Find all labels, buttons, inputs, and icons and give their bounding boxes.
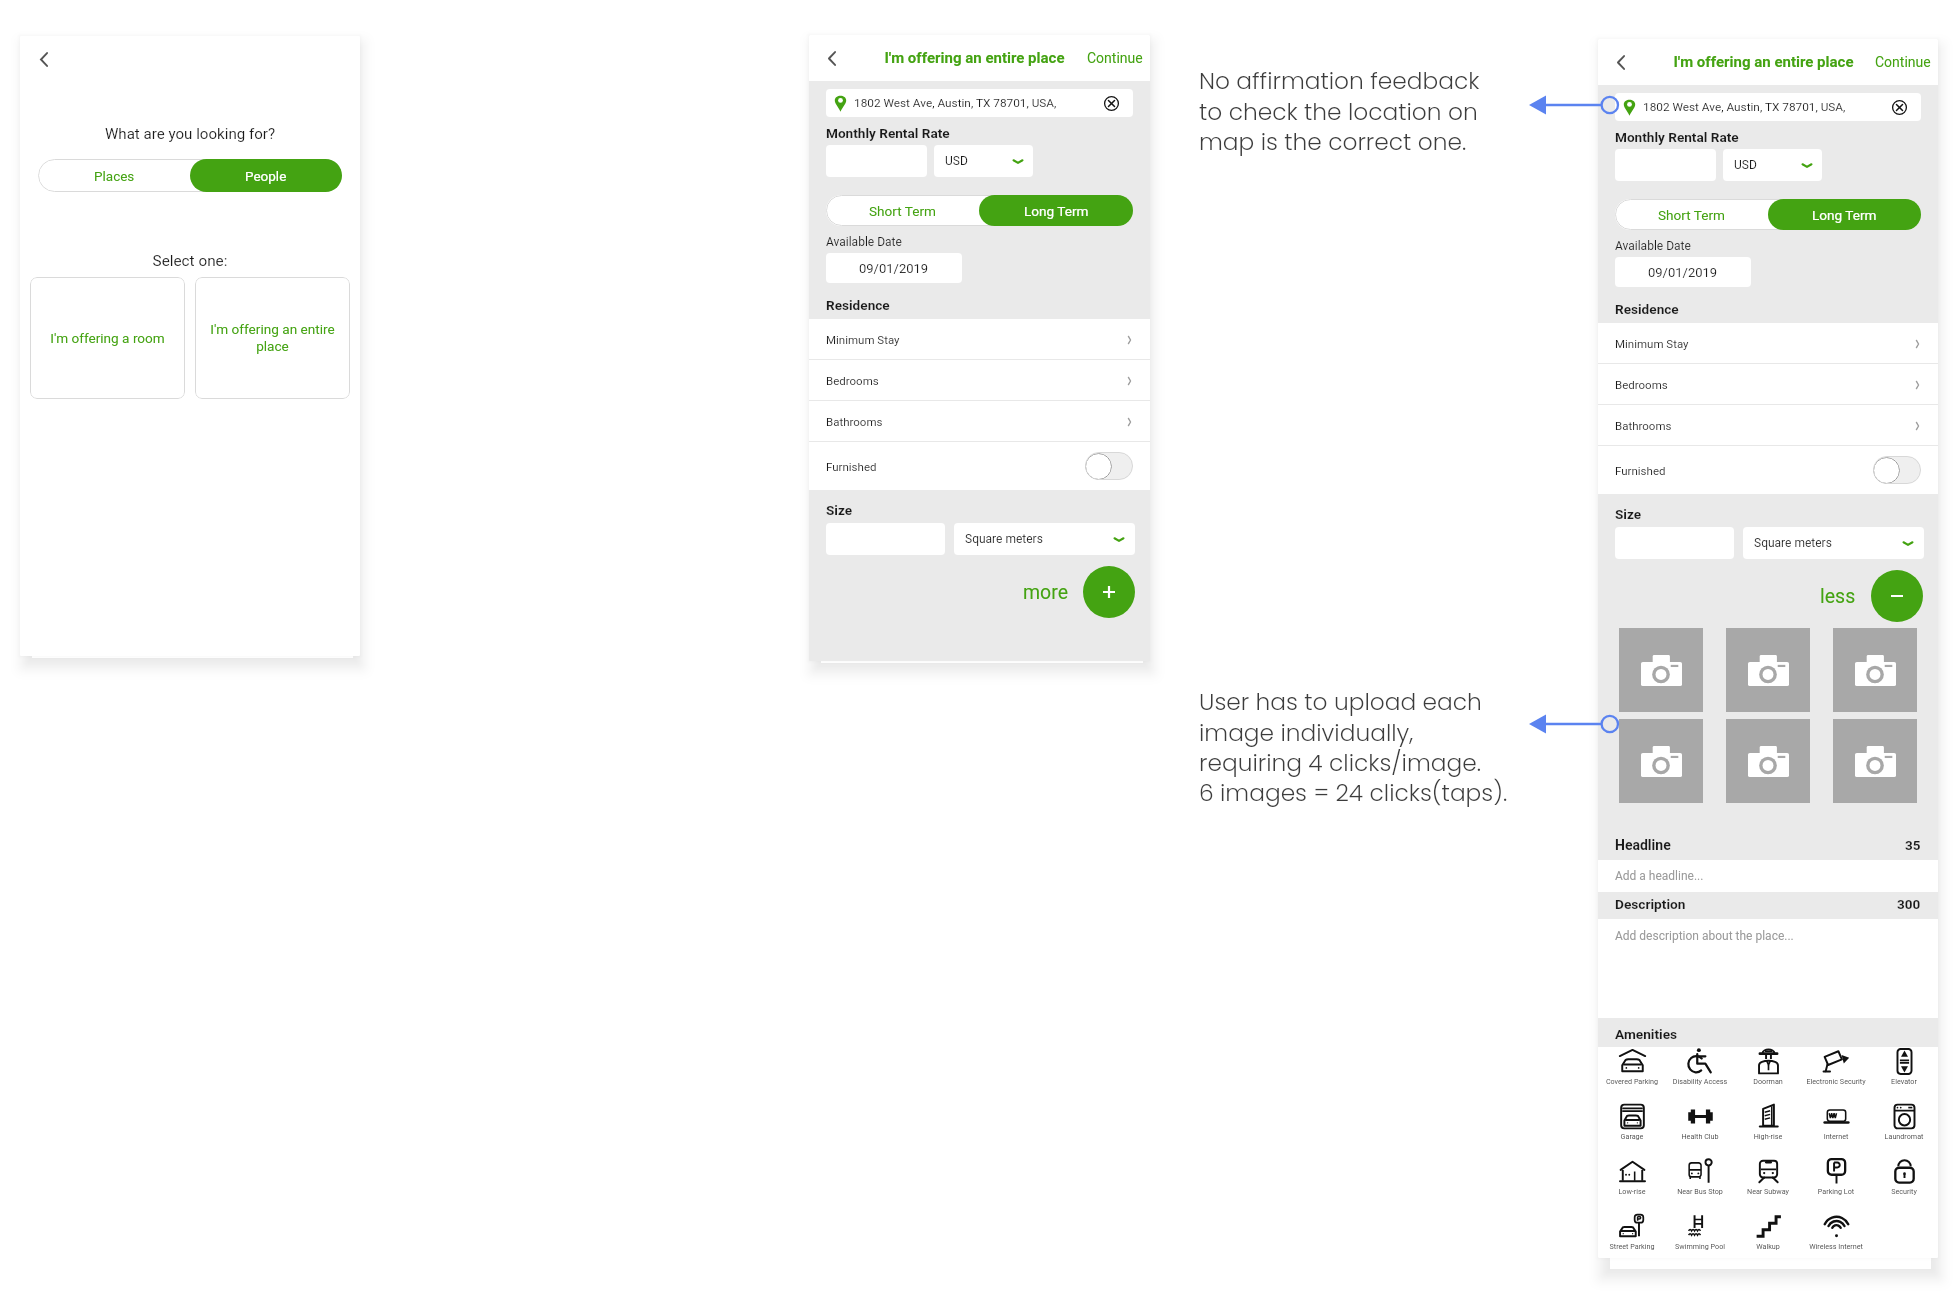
staticText: Headline xyxy=(1615,837,1671,853)
staticText: Near Subway xyxy=(1734,1187,1802,1195)
button[interactable]: I'm offering a room xyxy=(30,277,185,399)
staticText: 35 xyxy=(1905,837,1921,853)
button[interactable]: Bathrooms xyxy=(809,401,1150,442)
staticText: I'm offering a room xyxy=(50,330,165,346)
button[interactable]: Walkup xyxy=(1734,1212,1802,1258)
staticText: Description xyxy=(1615,896,1686,912)
button[interactable]: Add description about the place... xyxy=(1598,919,1938,1018)
button[interactable]: People xyxy=(190,159,342,192)
button[interactable]: Doorman xyxy=(1734,1047,1802,1102)
staticText: 09/01/2019 xyxy=(859,261,929,276)
staticText: No affirmation feedback to check the loc… xyxy=(1199,65,1480,159)
button[interactable]: Show less xyxy=(1871,570,1923,622)
staticText: more xyxy=(1023,581,1068,604)
staticText: Electronic Security xyxy=(1802,1077,1870,1085)
staticText: Garage xyxy=(1598,1132,1666,1140)
button[interactable]: Bathrooms xyxy=(1598,405,1938,446)
staticText: Covered Parking xyxy=(1598,1077,1666,1085)
staticText: Long Term xyxy=(1024,203,1089,219)
button[interactable]: Health Club xyxy=(1666,1102,1734,1157)
button[interactable]: 09/01/2019 xyxy=(826,253,962,283)
button[interactable]: Street Parking xyxy=(1598,1212,1666,1258)
button[interactable]: Wireless Internet xyxy=(1802,1212,1870,1258)
button[interactable]: 1802 West Ave, Austin, TX 78701, USA, xyxy=(1615,93,1921,121)
staticText: Size xyxy=(826,502,853,518)
button[interactable]: I'm offering an entire place xyxy=(195,277,350,399)
staticText: Places xyxy=(94,168,135,184)
staticText: Monthly Rental Rate xyxy=(1615,129,1739,145)
button[interactable]: Short Term xyxy=(826,195,979,226)
button[interactable]: Minimum Stay xyxy=(809,319,1150,360)
staticText: Parking Lot xyxy=(1802,1187,1870,1195)
staticText: What are you looking for? xyxy=(20,125,360,143)
button[interactable]: Back xyxy=(31,46,57,72)
button[interactable]: Low-rise xyxy=(1598,1157,1666,1212)
button[interactable]: USD xyxy=(1723,149,1822,181)
staticText: Swimming Pool xyxy=(1666,1242,1734,1250)
staticText: I'm offering an entire place xyxy=(884,49,1065,67)
button[interactable]: less xyxy=(1820,578,1856,615)
staticText: Select one: xyxy=(20,252,360,270)
staticText: Bedrooms xyxy=(1615,378,1668,391)
staticText: 300 xyxy=(1897,896,1921,912)
staticText: Residence xyxy=(826,297,890,313)
button[interactable]: Add a headline... xyxy=(1598,860,1938,892)
staticText: Elevator xyxy=(1870,1077,1938,1085)
button[interactable]: Add photo xyxy=(1726,628,1810,712)
button[interactable]: Back xyxy=(819,45,845,71)
button[interactable]: Square meters xyxy=(1743,527,1924,559)
button[interactable]: Add photo xyxy=(1833,628,1917,712)
button[interactable]: Covered Parking xyxy=(1598,1047,1666,1102)
button[interactable]: Long Term xyxy=(1768,199,1921,230)
button[interactable]: Add photo xyxy=(1833,719,1917,803)
button[interactable]: Near Subway xyxy=(1734,1157,1802,1212)
button[interactable]: Continue xyxy=(1864,48,1938,76)
button[interactable]: Bedrooms xyxy=(809,360,1150,401)
button[interactable]: Continue xyxy=(1076,44,1150,72)
staticText: Long Term xyxy=(1812,207,1877,223)
button[interactable]: Long Term xyxy=(979,195,1133,226)
staticText: USD xyxy=(1734,158,1757,172)
staticText: I'm offering an entire place xyxy=(1673,53,1854,71)
button[interactable]: Bedrooms xyxy=(1598,364,1938,405)
button[interactable]: Parking Lot xyxy=(1802,1157,1870,1212)
button[interactable]: Garage xyxy=(1598,1102,1666,1157)
button[interactable]: High-rise xyxy=(1734,1102,1802,1157)
button[interactable]: more xyxy=(1023,574,1068,611)
button[interactable]: Laundromat xyxy=(1870,1102,1938,1157)
staticText: I'm offering an entire place xyxy=(208,321,337,355)
button[interactable]: Security xyxy=(1870,1157,1938,1212)
button[interactable]: Minimum Stay xyxy=(1598,323,1938,364)
staticText: Street Parking xyxy=(1598,1242,1666,1250)
button[interactable]: Back xyxy=(1608,49,1634,75)
button[interactable]: Internet xyxy=(1802,1102,1870,1157)
staticText: Add a headline... xyxy=(1615,869,1704,883)
button[interactable]: USD xyxy=(934,145,1033,177)
button[interactable]: Add photo xyxy=(1619,719,1703,803)
button[interactable]: 1802 West Ave, Austin, TX 78701, USA, xyxy=(826,89,1133,117)
button[interactable]: Disability Access xyxy=(1666,1047,1734,1102)
staticText: 1802 West Ave, Austin, TX 78701, USA, xyxy=(854,96,1057,110)
staticText: Monthly Rental Rate xyxy=(826,125,950,141)
button[interactable]: Furnished xyxy=(1598,446,1938,494)
button[interactable]: Elevator xyxy=(1870,1047,1938,1102)
button[interactable]: Swimming Pool xyxy=(1666,1212,1734,1258)
button[interactable]: Short Term xyxy=(1615,199,1768,230)
staticText: Residence xyxy=(1615,301,1679,317)
button[interactable]: Square meters xyxy=(954,523,1135,555)
button[interactable]: Add photo xyxy=(1619,628,1703,712)
staticText: Continue xyxy=(1875,54,1931,70)
button[interactable]: 09/01/2019 xyxy=(1615,257,1751,287)
button[interactable]: Near Bus Stop xyxy=(1666,1157,1734,1212)
button[interactable]: Show more xyxy=(1083,566,1135,618)
staticText: Wireless Internet xyxy=(1802,1242,1870,1250)
staticText: Doorman xyxy=(1734,1077,1802,1085)
button[interactable]: Electronic Security xyxy=(1802,1047,1870,1102)
staticText: Walkup xyxy=(1734,1242,1802,1250)
button[interactable]: Add photo xyxy=(1726,719,1810,803)
staticText: Near Bus Stop xyxy=(1666,1187,1734,1195)
button[interactable]: Places xyxy=(38,159,190,192)
staticText: Continue xyxy=(1087,50,1143,66)
staticText: Square meters xyxy=(1754,536,1832,550)
button[interactable]: Furnished xyxy=(809,442,1150,490)
